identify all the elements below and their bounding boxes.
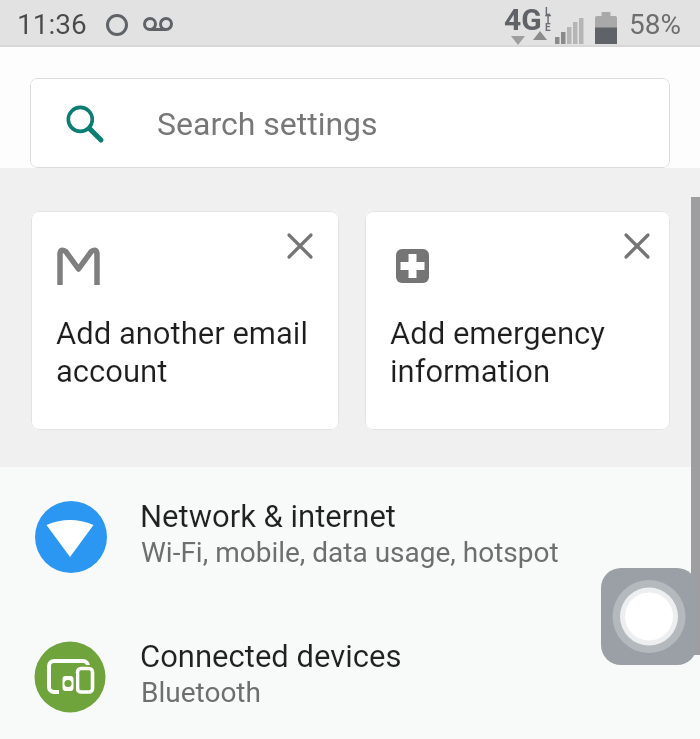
staticText: L <box>545 6 551 18</box>
button[interactable]: Search settings <box>30 78 670 168</box>
staticText: Add emergency <box>390 315 606 351</box>
button[interactable]: Network & internet <box>0 493 700 618</box>
button[interactable] <box>626 235 648 257</box>
staticText: information <box>390 353 551 389</box>
staticText: 58% <box>629 8 681 41</box>
staticText: E <box>545 22 551 34</box>
button[interactable] <box>601 568 697 665</box>
staticText: T <box>545 14 552 26</box>
staticText: 4G <box>504 2 542 37</box>
button[interactable]: Add emergency <box>365 211 670 430</box>
button[interactable]: Add another email <box>31 211 339 430</box>
staticText: Add another email <box>56 315 308 351</box>
staticText: account <box>56 353 168 389</box>
button[interactable] <box>289 235 311 257</box>
staticText: Network & internet <box>140 498 396 534</box>
staticText: Connected devices <box>140 638 402 674</box>
button[interactable]: Connected devices <box>0 633 700 739</box>
staticText: 11:36 <box>17 8 87 41</box>
staticText: Search settings <box>157 105 378 143</box>
staticText: Wi-Fi, mobile, data usage, hotspot <box>141 536 559 569</box>
staticText: Bluetooth <box>141 676 261 709</box>
